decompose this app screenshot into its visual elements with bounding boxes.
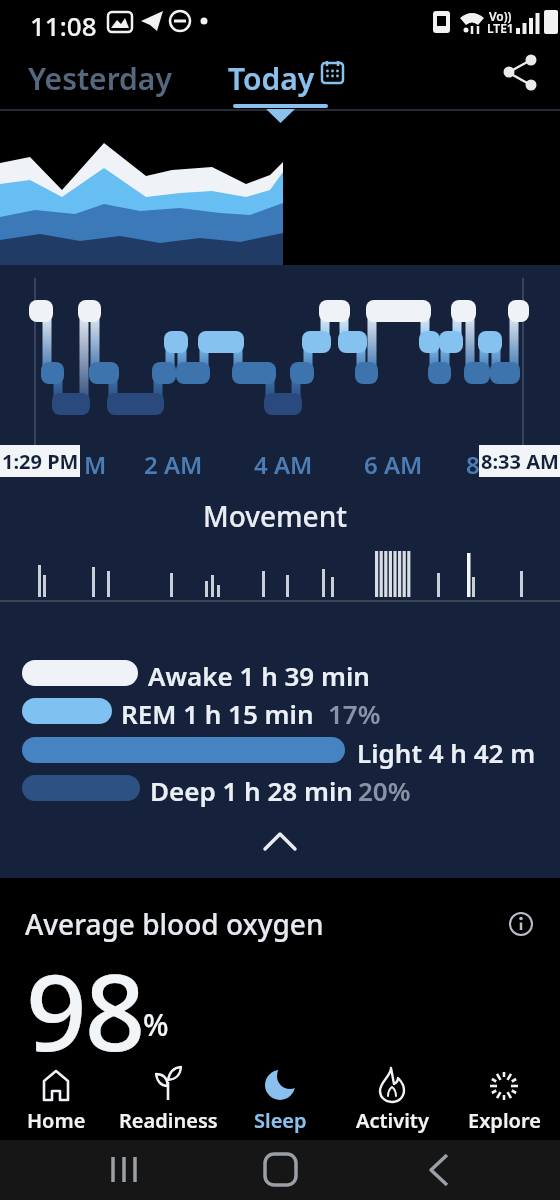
staticText: Explore — [468, 1107, 541, 1134]
staticText: Today — [228, 58, 315, 99]
button[interactable]: Yesterday — [28, 58, 172, 99]
staticText: 8:33 AM — [481, 448, 559, 475]
staticText: LTE1 — [487, 20, 514, 36]
staticText: M — [84, 448, 107, 481]
staticText: 4 AM — [254, 448, 313, 481]
button[interactable]: Today — [228, 58, 338, 99]
staticText: Movement — [203, 497, 347, 535]
staticText: 20% — [358, 773, 411, 808]
staticText: 8 — [466, 448, 480, 481]
staticText: Yesterday — [28, 58, 172, 99]
button[interactable]: Sleep — [228, 1062, 332, 1134]
staticText: 6 AM — [364, 448, 423, 481]
staticText: Deep 1 h 28 min — [150, 773, 353, 808]
button[interactable]: Activity — [340, 1062, 444, 1134]
staticText: Activity — [356, 1107, 429, 1134]
staticText: Sleep — [254, 1107, 307, 1134]
button[interactable]: Explore — [452, 1062, 556, 1134]
staticText: 98 — [26, 938, 144, 1082]
staticText: Light 4 h 42 m — [357, 735, 536, 770]
staticText: 1:29 PM — [2, 448, 79, 475]
staticText: 2 AM — [144, 448, 203, 481]
staticText: 11:08 — [30, 8, 97, 43]
staticText: 17% — [328, 696, 381, 731]
button[interactable]: Home — [4, 1062, 108, 1134]
staticText: REM 1 h 15 min — [121, 696, 314, 731]
staticText: Average blood oxygen — [25, 905, 324, 943]
button[interactable] — [505, 908, 537, 940]
button[interactable]: Readiness — [116, 1062, 220, 1134]
staticText: % — [143, 1004, 169, 1045]
button[interactable] — [250, 824, 310, 864]
staticText: Awake 1 h 39 min — [148, 658, 370, 693]
staticText: Vo)) — [489, 8, 512, 24]
staticText: Readiness — [119, 1107, 218, 1134]
staticText: Home — [27, 1107, 86, 1134]
button[interactable] — [496, 52, 544, 96]
